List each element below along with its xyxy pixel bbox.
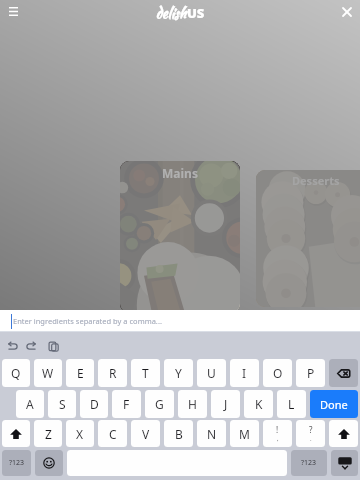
staticText: Enter ingredients separated by a comma..… (13, 316, 162, 326)
staticText: M (239, 426, 250, 442)
staticText: E (77, 365, 84, 381)
button[interactable]: Hide keyboard (331, 450, 358, 476)
button[interactable]: Done (310, 390, 358, 418)
button[interactable]: Shift (329, 420, 358, 447)
staticText: Q (11, 365, 21, 381)
button[interactable]: K (244, 390, 273, 418)
button[interactable]: ! (263, 420, 292, 447)
button[interactable]: Q (2, 359, 30, 387)
staticText: O (273, 365, 283, 381)
button[interactable]: J (211, 390, 240, 418)
staticText: ? (309, 424, 313, 435)
button[interactable]: Y (164, 359, 193, 387)
button[interactable]: P (296, 359, 325, 387)
button[interactable]: Shift (2, 420, 30, 447)
staticText: Y (175, 365, 182, 381)
button[interactable]: G (145, 390, 174, 418)
staticText: V (142, 426, 150, 442)
staticText: US (187, 4, 205, 22)
button[interactable]: B (164, 420, 193, 447)
button[interactable]: Backspace (329, 359, 358, 387)
staticText: C (109, 426, 117, 442)
button[interactable]: V (131, 420, 160, 447)
button[interactable]: Enter ingredients separated by a comma..… (0, 310, 360, 332)
staticText: ?123 (9, 458, 25, 468)
staticText: Desserts (292, 173, 340, 188)
staticText: A (26, 396, 34, 412)
staticText: T (142, 365, 149, 381)
button[interactable]: A (16, 390, 44, 418)
button[interactable]: Desserts (256, 170, 360, 307)
button[interactable]: Paste (44, 337, 62, 355)
button[interactable]: T (131, 359, 160, 387)
staticText: G (155, 396, 164, 412)
button[interactable]: F (112, 390, 141, 418)
staticText: H (188, 396, 197, 412)
staticText: , (277, 435, 279, 443)
staticText: ! (276, 424, 279, 435)
staticText: N (207, 426, 217, 442)
button[interactable]: Mains (120, 161, 240, 313)
button[interactable]: E (66, 359, 94, 387)
button[interactable]: Menu (2, 0, 24, 22)
staticText: P (307, 365, 315, 381)
button[interactable]: D (80, 390, 108, 418)
button[interactable]: M (230, 420, 259, 447)
button[interactable]: Redo (23, 337, 41, 355)
button[interactable]: N (197, 420, 226, 447)
button[interactable]: X (66, 420, 94, 447)
staticText: R (109, 365, 117, 381)
button[interactable]: Z (34, 420, 62, 447)
button[interactable]: L (277, 390, 306, 418)
button[interactable]: U (197, 359, 226, 387)
button[interactable]: Emoji (35, 450, 63, 476)
button[interactable]: Close (337, 2, 357, 22)
button[interactable]: W (34, 359, 62, 387)
button[interactable]: S (48, 390, 76, 418)
staticText: L (288, 396, 295, 412)
button[interactable]: R (98, 359, 127, 387)
button[interactable]: O (263, 359, 292, 387)
staticText: ?123 (301, 458, 317, 468)
staticText: F (123, 396, 130, 412)
staticText: Z (45, 426, 52, 442)
staticText: J (224, 396, 228, 412)
button[interactable]: C (98, 420, 127, 447)
button[interactable]: H (178, 390, 207, 418)
staticText: X (76, 426, 84, 442)
staticText: I (242, 365, 247, 381)
button[interactable]: ? (296, 420, 325, 447)
staticText: Done (320, 397, 348, 412)
button[interactable]: Symbols (2, 450, 31, 476)
staticText: Mains (162, 165, 198, 181)
staticText: D (90, 396, 99, 412)
button[interactable]: Undo (2, 337, 20, 355)
staticText: S (59, 396, 66, 412)
staticText: . (310, 435, 312, 443)
staticText: B (175, 426, 183, 442)
button[interactable]: Symbols (291, 450, 327, 476)
staticText: delish (156, 3, 187, 23)
staticText: K (255, 396, 263, 412)
staticText: W (42, 365, 54, 381)
staticText: U (207, 365, 216, 381)
button[interactable]: I (230, 359, 259, 387)
